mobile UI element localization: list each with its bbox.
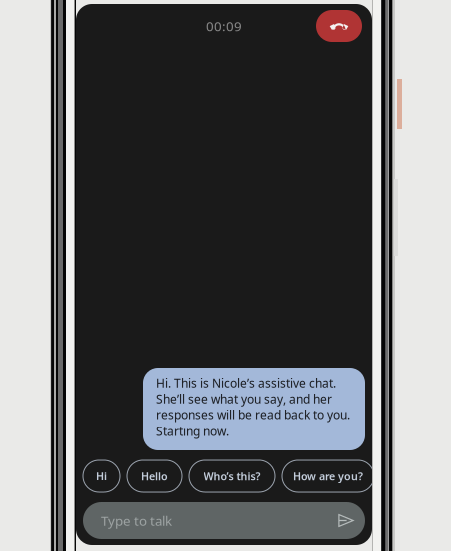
staticText: Who’s this? [203, 469, 260, 483]
staticText: Hi [96, 469, 107, 483]
button[interactable]: How are you? [282, 460, 374, 492]
button[interactable]: Type to talk [83, 502, 365, 539]
staticText: Hello [141, 469, 168, 483]
button[interactable]: End call [316, 10, 362, 42]
staticText: Type to talk [101, 512, 172, 529]
button[interactable]: Hello [127, 460, 182, 492]
button[interactable]: Who’s this? [189, 460, 275, 492]
staticText: Hi. This is Nicole’s assistive chat. She… [156, 375, 350, 439]
staticText: 00:09 [206, 17, 242, 35]
staticText: How are you? [293, 469, 363, 483]
button[interactable]: Hi [83, 460, 120, 492]
